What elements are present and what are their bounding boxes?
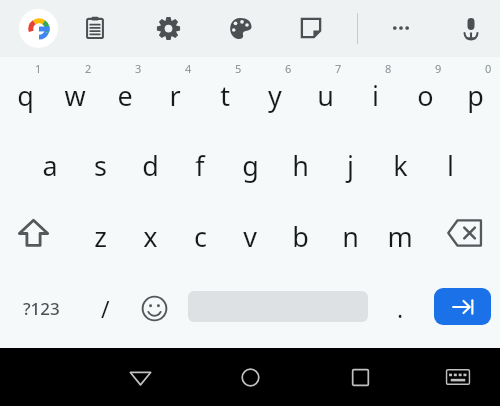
button[interactable]: q <box>0 57 50 127</box>
button[interactable]: Recents <box>333 359 387 395</box>
staticText: a <box>42 147 58 184</box>
staticText: 5 <box>235 61 242 76</box>
staticText: u <box>317 77 334 114</box>
button[interactable]: s <box>75 127 125 197</box>
staticText: n <box>342 218 359 255</box>
staticText: 9 <box>435 61 442 76</box>
staticText: l <box>447 147 454 184</box>
button[interactable]: e <box>100 57 150 127</box>
button[interactable]: Voice input <box>450 7 492 49</box>
staticText: s <box>94 147 107 184</box>
staticText: z <box>94 218 107 255</box>
staticText: f <box>195 147 205 184</box>
staticText: w <box>64 77 86 114</box>
button[interactable]: ?123 <box>0 272 82 344</box>
button[interactable]: i <box>350 57 400 127</box>
staticText: i <box>372 77 379 114</box>
button[interactable]: o <box>400 57 450 127</box>
staticText: 2 <box>85 61 92 76</box>
staticText: p <box>467 77 484 114</box>
staticText: / <box>101 293 110 324</box>
button[interactable]: . <box>372 272 428 344</box>
button[interactable]: Settings <box>147 7 189 49</box>
button[interactable]: Shift <box>2 197 64 269</box>
button[interactable]: h <box>275 127 325 197</box>
button[interactable]: f <box>175 127 225 197</box>
staticText: o <box>417 77 434 114</box>
button[interactable]: y <box>250 57 300 127</box>
button[interactable]: m <box>375 197 425 269</box>
staticText: g <box>242 147 259 184</box>
button[interactable]: c <box>175 197 225 269</box>
button[interactable]: Switch keyboard <box>431 359 485 395</box>
staticText: t <box>220 77 230 114</box>
staticText: e <box>117 77 133 114</box>
staticText: m <box>387 218 413 255</box>
button[interactable]: l <box>425 127 475 197</box>
button[interactable]: Stickers <box>290 7 332 49</box>
button[interactable]: w <box>50 57 100 127</box>
button[interactable]: d <box>125 127 175 197</box>
staticText: 8 <box>385 61 392 76</box>
staticText: 0 <box>485 61 492 76</box>
button[interactable]: k <box>375 127 425 197</box>
button[interactable]: n <box>325 197 375 269</box>
staticText: b <box>292 218 309 255</box>
staticText: 7 <box>335 61 342 76</box>
button[interactable]: v <box>225 197 275 269</box>
staticText: j <box>347 147 354 184</box>
staticText: c <box>194 218 207 255</box>
button[interactable]: More options <box>380 7 422 49</box>
button[interactable]: j <box>325 127 375 197</box>
button[interactable]: a <box>25 127 75 197</box>
button[interactable]: g <box>225 127 275 197</box>
staticText: 4 <box>185 61 192 76</box>
button[interactable]: p <box>450 57 500 127</box>
button[interactable]: u <box>300 57 350 127</box>
staticText: . <box>397 293 404 324</box>
staticText: 3 <box>135 61 142 76</box>
staticText: k <box>393 147 408 184</box>
button[interactable]: Emoji <box>128 272 180 344</box>
button[interactable]: Backspace <box>434 197 496 269</box>
button[interactable]: Google search <box>19 9 58 48</box>
staticText: q <box>17 77 34 114</box>
staticText: d <box>142 147 159 184</box>
staticText: v <box>243 218 257 255</box>
staticText: h <box>292 147 309 184</box>
button[interactable]: z <box>75 197 125 269</box>
staticText: ?123 <box>23 297 60 320</box>
button[interactable]: Back <box>113 359 167 395</box>
button[interactable]: r <box>150 57 200 127</box>
button[interactable]: b <box>275 197 325 269</box>
button[interactable]: Clipboard <box>74 7 116 49</box>
staticText: x <box>143 218 158 255</box>
staticText: y <box>268 77 282 114</box>
button[interactable]: Themes <box>219 7 261 49</box>
button[interactable]: Home <box>223 359 277 395</box>
staticText: r <box>169 77 181 114</box>
button[interactable]: Enter <box>434 288 491 325</box>
staticText: 1 <box>35 61 42 76</box>
button[interactable]: t <box>200 57 250 127</box>
button[interactable]: / <box>82 272 128 344</box>
button[interactable]: x <box>125 197 175 269</box>
staticText: 6 <box>285 61 292 76</box>
